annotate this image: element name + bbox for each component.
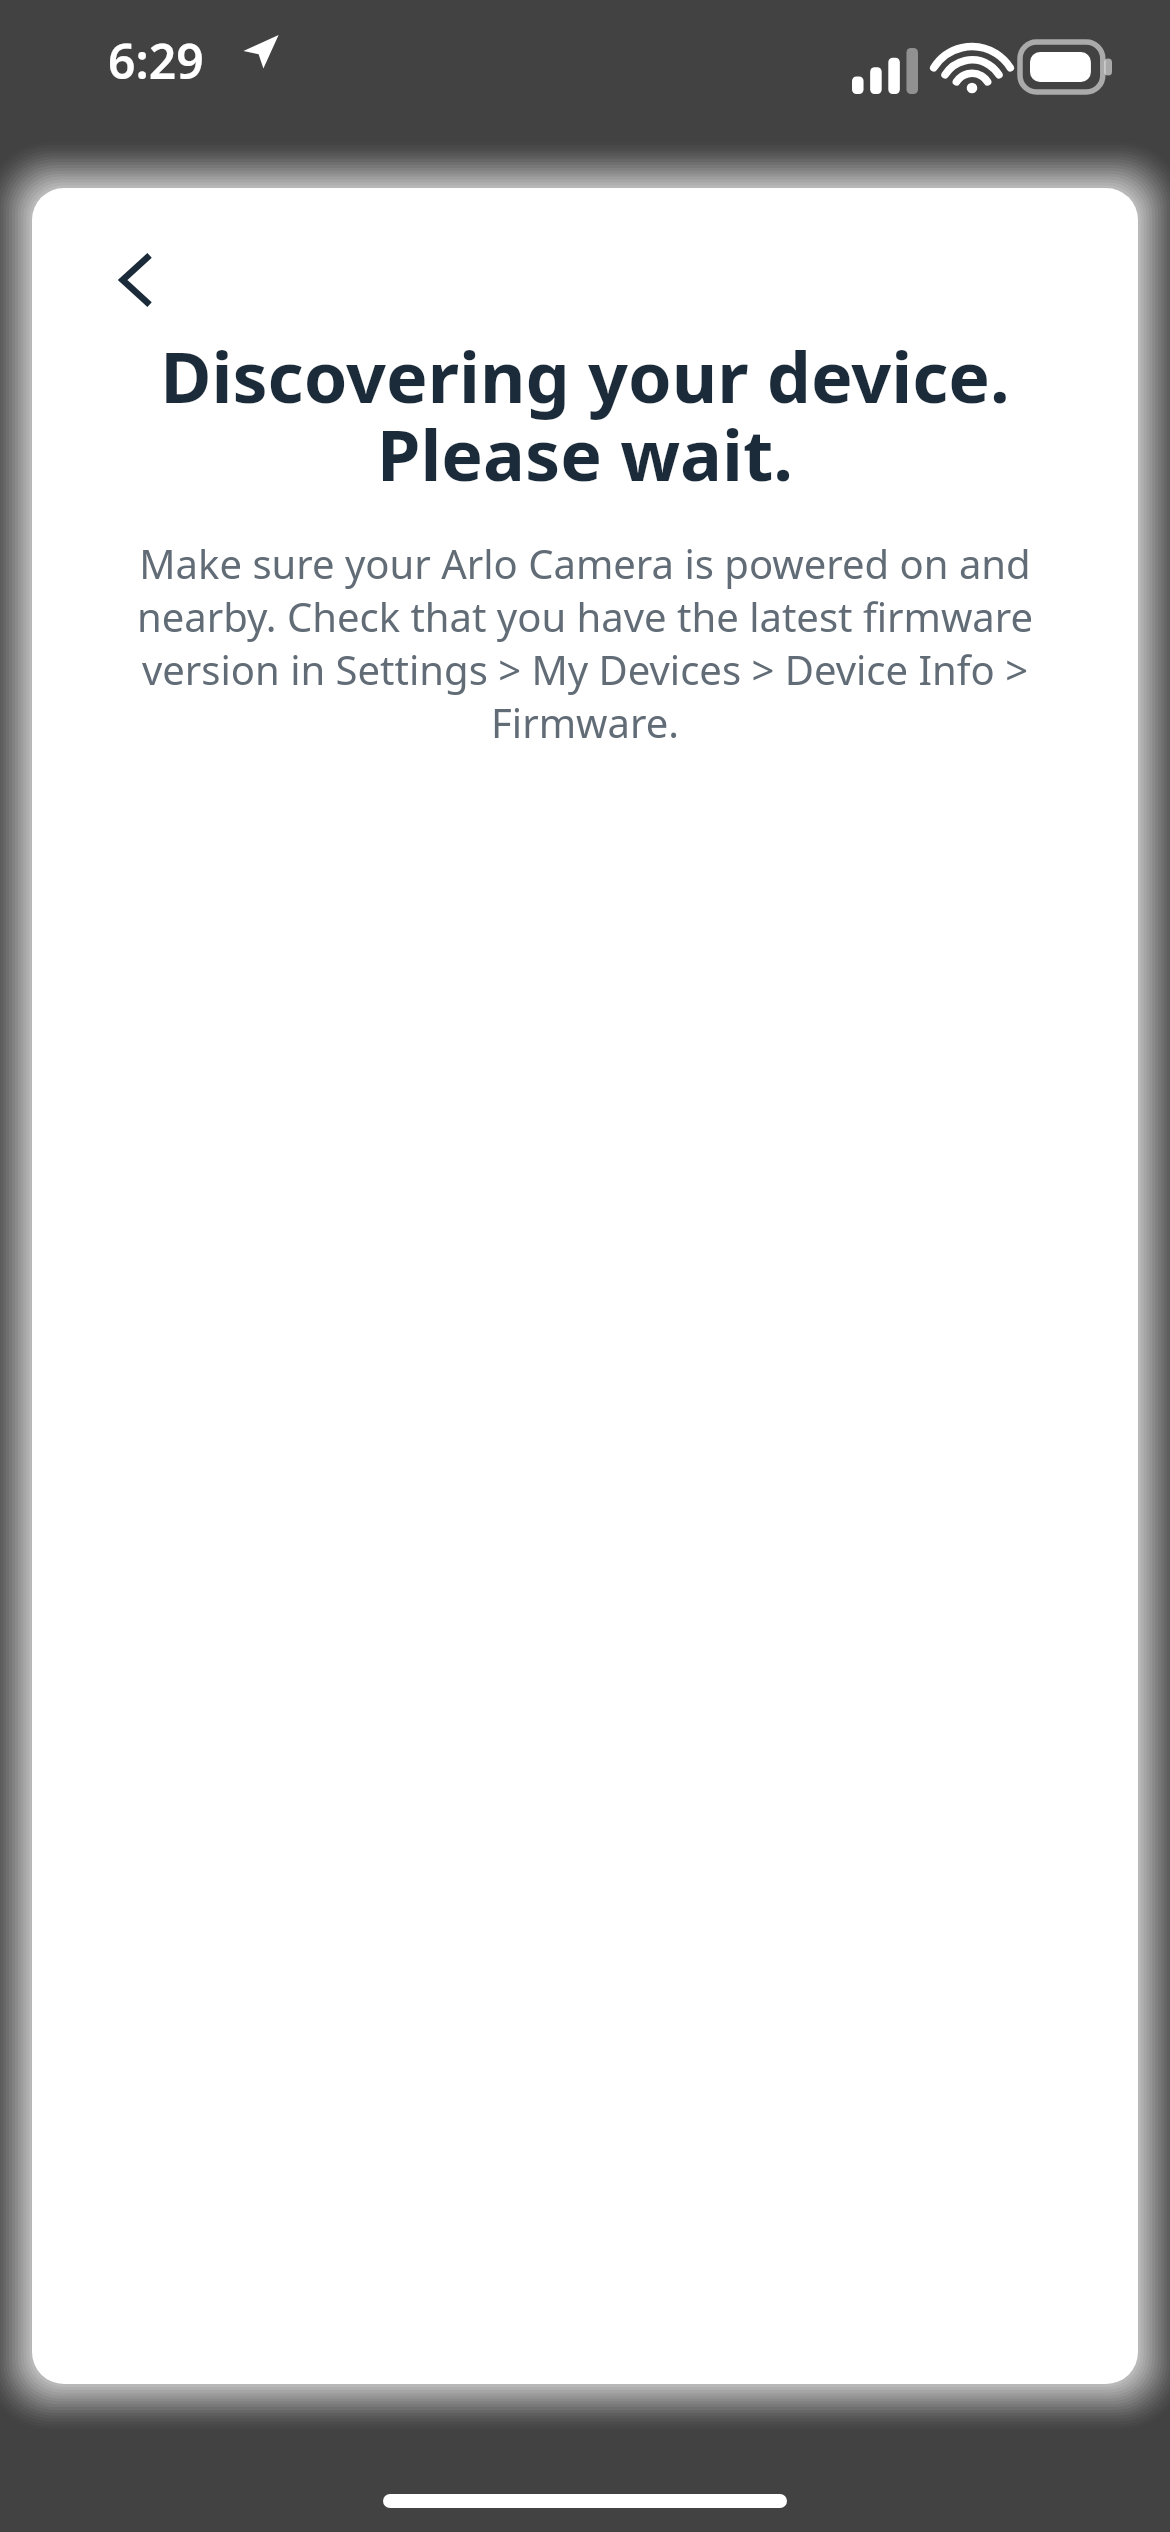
other: Battery [1020,42,1112,92]
staticText: Make sure your Arlo Camera is powered on… [94,536,1076,749]
other: Cellular signal [852,48,918,94]
staticText: Discovering your device. Please wait. [94,328,1076,502]
button[interactable]: Back [84,228,188,332]
other: Wi-Fi [942,47,1002,93]
other: Location [241,31,281,71]
staticText: 6:29 [108,28,204,93]
